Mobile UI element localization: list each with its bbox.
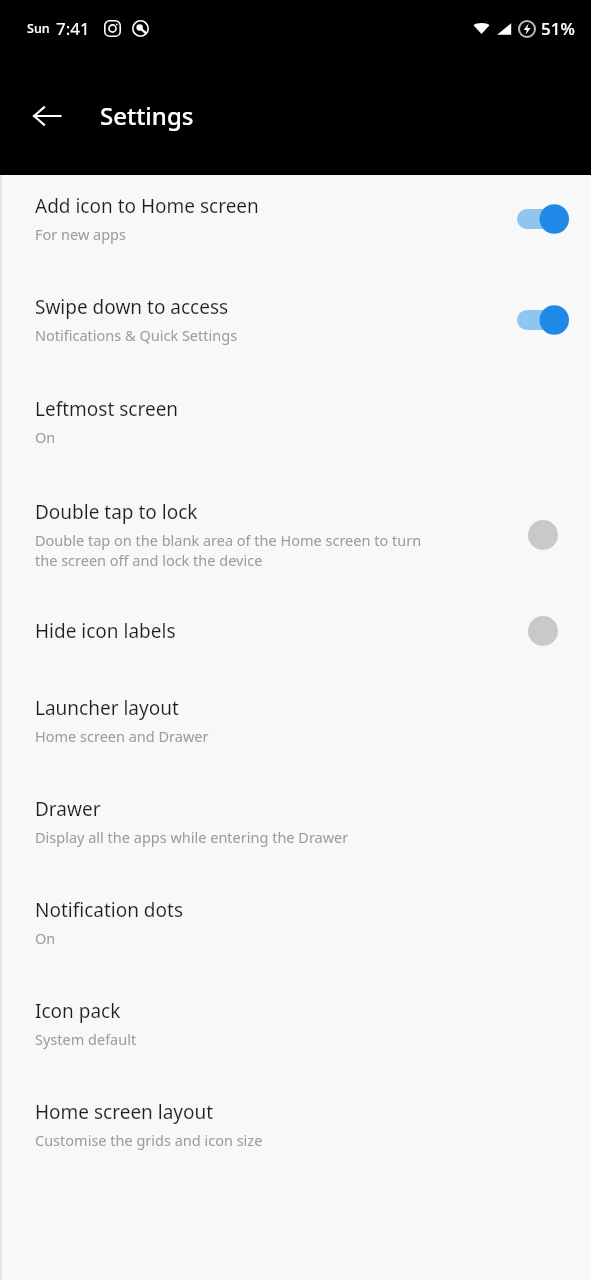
button[interactable]: Drawer: [0, 766, 591, 867]
button[interactable]: Double tap to lock: [0, 467, 591, 588]
staticText: On: [35, 928, 505, 948]
staticText: Icon pack: [35, 998, 121, 1024]
staticText: Hide icon labels: [35, 618, 176, 644]
button[interactable]: Toggle off: [526, 614, 560, 648]
staticText: 7:41: [56, 17, 90, 40]
button[interactable]: Icon pack: [0, 968, 591, 1069]
staticText: Settings: [100, 99, 194, 132]
button[interactable]: Launcher layout: [0, 670, 591, 766]
button[interactable]: Back: [14, 83, 80, 149]
staticText: System default: [35, 1029, 505, 1049]
staticText: Notifications & Quick Settings: [35, 325, 505, 345]
staticText: On: [35, 427, 505, 447]
button[interactable]: Leftmost screen: [0, 365, 591, 467]
staticText: Swipe down to access: [35, 294, 229, 320]
staticText: Home screen and Drawer: [35, 726, 505, 746]
button[interactable]: Toggle off: [526, 518, 560, 552]
button[interactable]: Add icon to Home screen: [0, 175, 591, 264]
button[interactable]: Toggle on: [517, 203, 569, 235]
button[interactable]: Swipe down to access: [0, 264, 591, 365]
staticText: Notification dots: [35, 897, 183, 923]
staticText: Customise the grids and icon size: [35, 1130, 505, 1150]
button[interactable]: Hide icon labels: [0, 588, 591, 670]
staticText: Leftmost screen: [35, 396, 179, 422]
staticText: Double tap on the blank area of the Home…: [35, 530, 440, 570]
staticText: Drawer: [35, 796, 101, 822]
staticText: Add icon to Home screen: [35, 193, 259, 219]
button[interactable]: Toggle on: [517, 304, 569, 336]
staticText: Sun: [27, 20, 50, 37]
staticText: Launcher layout: [35, 695, 179, 721]
staticText: Double tap to lock: [35, 499, 198, 525]
staticText: 51%: [541, 17, 575, 40]
staticText: Home screen layout: [35, 1099, 214, 1125]
button[interactable]: Home screen layout: [0, 1069, 591, 1170]
staticText: For new apps: [35, 224, 505, 244]
staticText: Display all the apps while entering the …: [35, 827, 505, 847]
button[interactable]: Notification dots: [0, 867, 591, 968]
